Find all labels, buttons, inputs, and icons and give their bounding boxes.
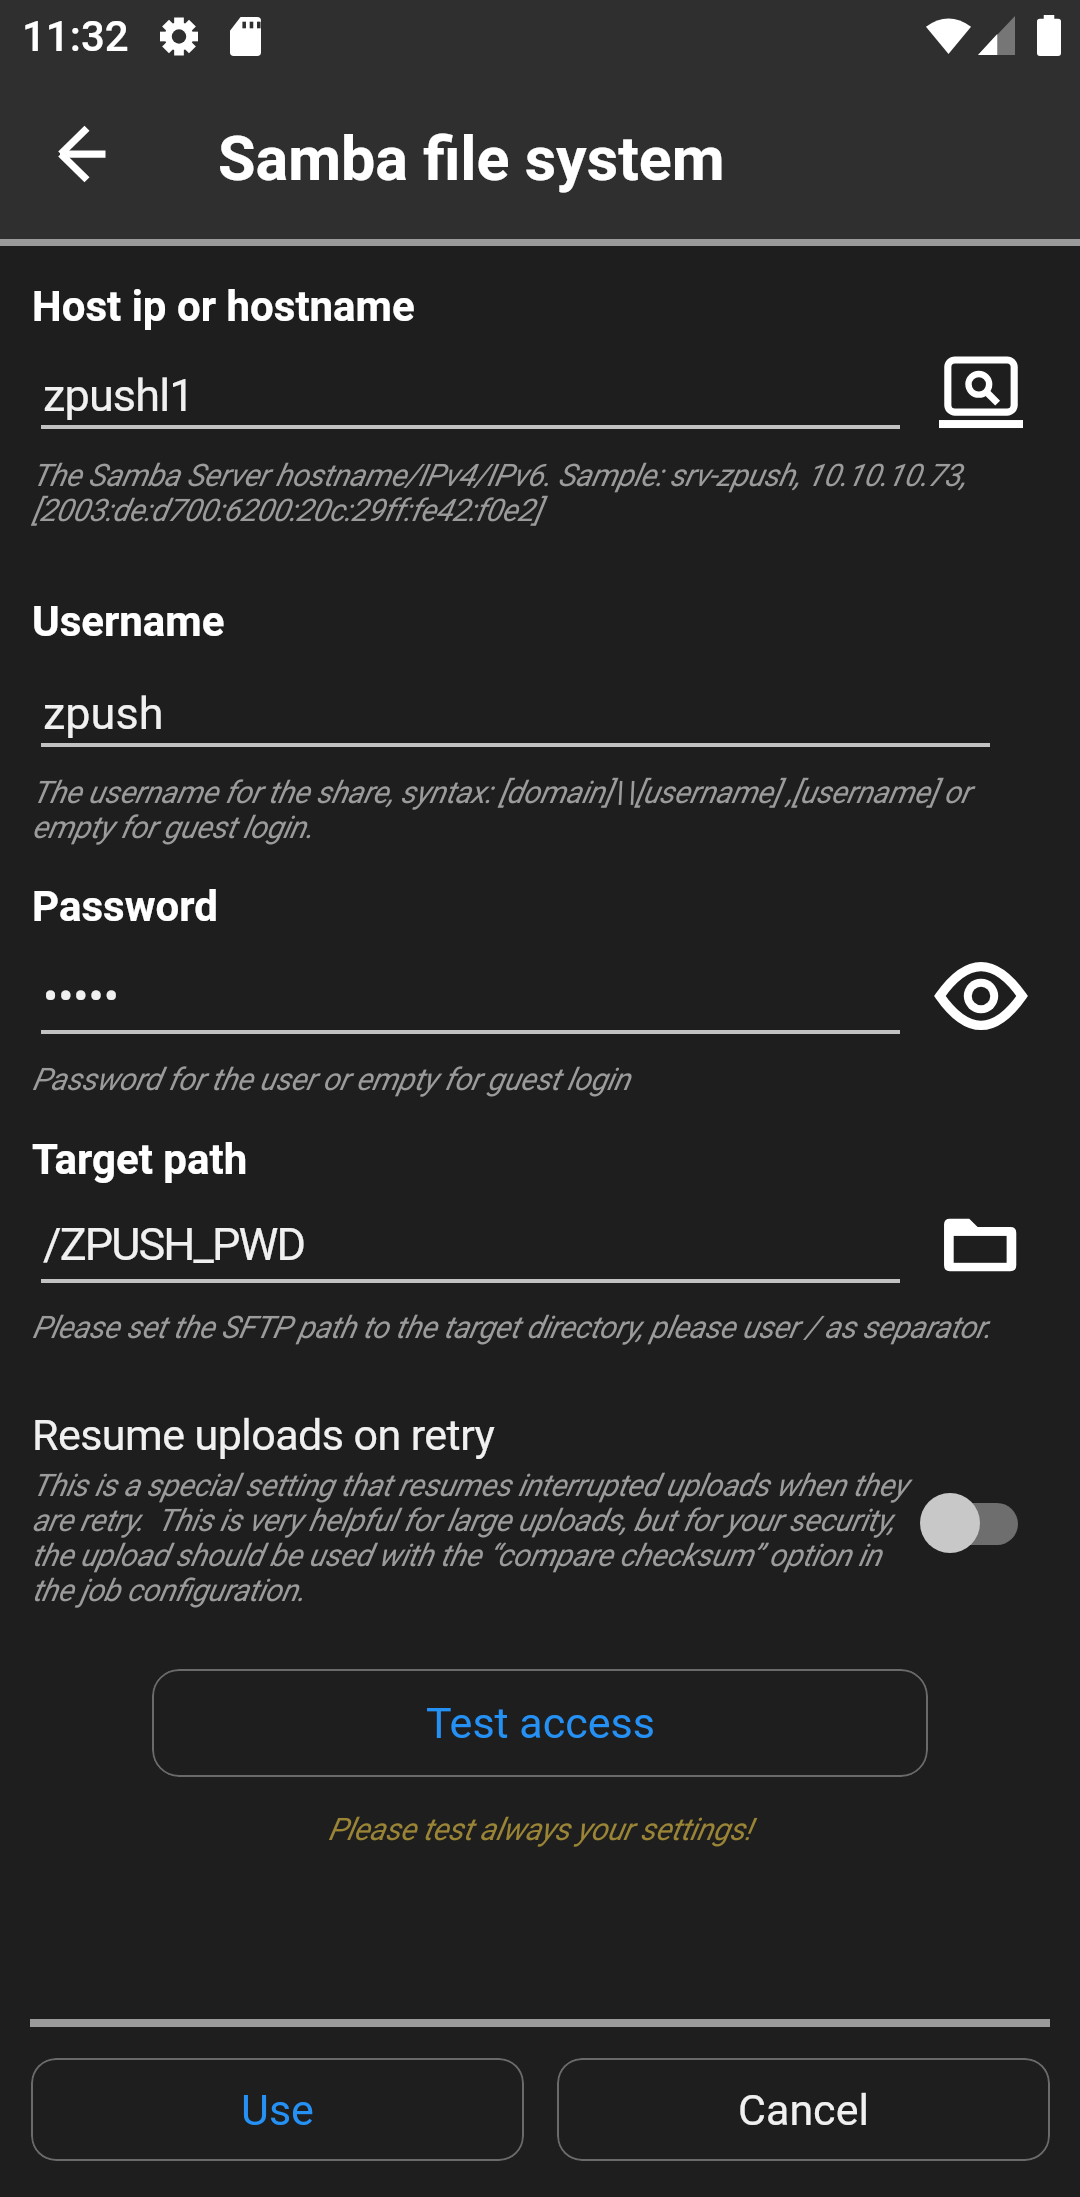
staticText: ••••• <box>43 970 119 1023</box>
staticText: Password <box>32 882 218 931</box>
staticText: zpush <box>43 687 164 740</box>
button[interactable]: ••••• <box>41 953 900 1030</box>
staticText: Please set the SFTP path to the target d… <box>32 1309 1072 1345</box>
staticText: Cancel <box>738 2085 869 2135</box>
staticText: 11:32 <box>22 12 129 61</box>
staticText: The username for the share, syntax: [dom… <box>32 774 1072 846</box>
button[interactable]: Back <box>32 104 132 204</box>
staticText: Samba file system <box>218 123 725 194</box>
staticText: /ZPUSH_PWD <box>43 1218 305 1271</box>
button[interactable]: /ZPUSH_PWD <box>41 1202 900 1279</box>
button[interactable]: zpush <box>41 670 990 747</box>
button[interactable]: Search host <box>935 348 1027 440</box>
button[interactable]: Show password <box>935 950 1027 1042</box>
staticText: Test access <box>426 1698 655 1748</box>
button[interactable]: Cancel <box>557 2058 1050 2161</box>
staticText: Host ip or hostname <box>32 282 415 331</box>
button[interactable]: Resume uploads on retry toggle <box>920 1493 1018 1555</box>
staticText: Target path <box>32 1135 248 1184</box>
button[interactable]: Browse folders <box>935 1200 1027 1292</box>
staticText: Username <box>32 597 225 646</box>
button[interactable]: zpushl1 <box>41 352 900 429</box>
staticText: Password for the user or empty for guest… <box>32 1061 1072 1097</box>
staticText: The Samba Server hostname/IPv4/IPv6. Sam… <box>32 457 1072 529</box>
staticText: Resume uploads on retry <box>32 1410 495 1460</box>
staticText: This is a special setting that resumes i… <box>32 1467 1072 1609</box>
staticText: zpushl1 <box>43 369 194 422</box>
staticText: Use <box>241 2085 314 2135</box>
staticText: Please test always your settings! <box>328 1811 752 1847</box>
button[interactable]: Resume uploads on retry <box>0 1398 1080 1598</box>
button[interactable]: Test access <box>152 1669 928 1777</box>
button[interactable]: Use <box>31 2058 524 2161</box>
